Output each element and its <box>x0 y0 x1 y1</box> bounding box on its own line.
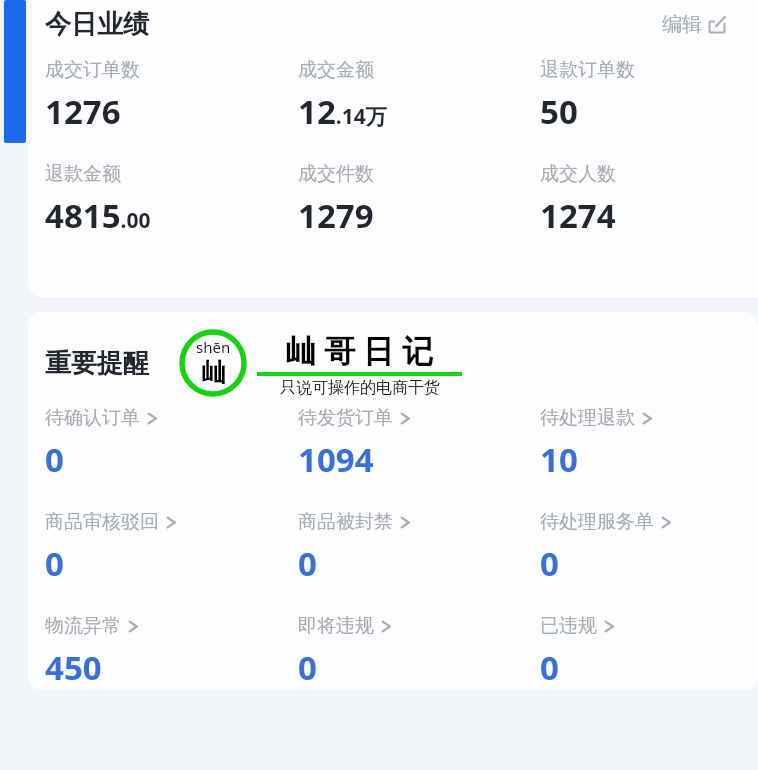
staticText: 退款金额 <box>45 162 121 186</box>
staticText: 4815.00 <box>45 193 151 238</box>
staticText: 物流异常 <box>45 614 121 638</box>
staticText: 0 <box>540 645 559 690</box>
staticText: 今日业绩 <box>45 8 149 41</box>
button[interactable]: 待处理退款 <box>540 406 758 482</box>
staticText: 0 <box>45 437 64 482</box>
staticText: 已违规 <box>540 614 597 638</box>
staticText: 成交订单数 <box>45 58 140 82</box>
staticText: 50 <box>540 89 578 134</box>
button[interactable]: 待处理服务单 <box>540 510 758 586</box>
staticText: 商品审核驳回 <box>45 510 159 534</box>
staticText: 12.14万 <box>298 89 387 134</box>
staticText: 1276 <box>45 89 121 134</box>
staticText: 退款订单数 <box>540 58 635 82</box>
button[interactable]: 成交人数 <box>540 162 758 238</box>
staticText: 商品被封禁 <box>298 510 393 534</box>
button[interactable]: 退款订单数 <box>540 58 758 134</box>
staticText: 待发货订单 <box>298 406 393 430</box>
button[interactable]: 即将违规 <box>298 614 540 690</box>
button[interactable]: 成交件数 <box>298 162 540 238</box>
staticText: 待处理服务单 <box>540 510 654 534</box>
button[interactable]: 待发货订单 <box>298 406 540 482</box>
button[interactable]: 退款金额 <box>45 162 298 238</box>
staticText: 450 <box>45 645 102 690</box>
staticText: 重要提醒 <box>45 347 149 380</box>
other: 编辑 <box>708 16 726 34</box>
staticText: 待确认订单 <box>45 406 140 430</box>
staticText: 0 <box>298 645 317 690</box>
button[interactable]: 待确认订单 <box>45 406 298 482</box>
staticText: 只说可操作的电商干货 <box>280 378 440 398</box>
staticText: shēn <box>196 337 231 357</box>
button[interactable]: 成交金额 <box>298 58 540 134</box>
staticText: 成交人数 <box>540 162 616 186</box>
staticText: 1094 <box>298 437 374 482</box>
staticText: 0 <box>540 541 559 586</box>
staticText: 即将违规 <box>298 614 374 638</box>
button[interactable]: 物流异常 <box>45 614 298 690</box>
button[interactable]: 商品审核驳回 <box>45 510 298 586</box>
staticText: 1279 <box>298 193 374 238</box>
staticText: 10 <box>540 437 578 482</box>
staticText: 待处理退款 <box>540 406 635 430</box>
button[interactable]: 商品被封禁 <box>298 510 540 586</box>
staticText: 成交金额 <box>298 58 374 82</box>
staticText: 0 <box>45 541 64 586</box>
button[interactable]: 编辑 <box>658 8 730 41</box>
staticText: 编辑 <box>662 12 702 37</box>
staticText: 屾 哥 日 记 <box>285 329 434 371</box>
staticText: 1274 <box>540 193 616 238</box>
button[interactable]: 已违规 <box>540 614 758 690</box>
staticText: 0 <box>298 541 317 586</box>
staticText: 成交件数 <box>298 162 374 186</box>
staticText: 屾 <box>201 357 226 388</box>
button[interactable]: 成交订单数 <box>45 58 298 134</box>
